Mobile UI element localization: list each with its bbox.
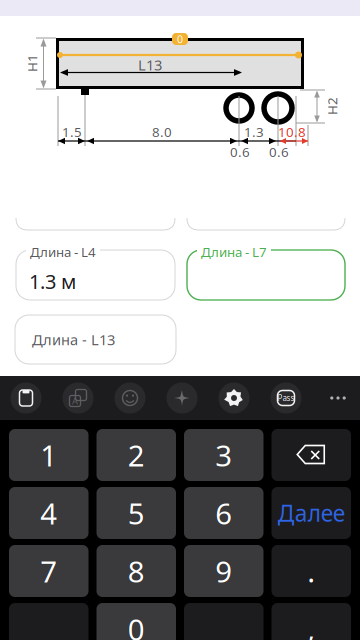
staticText: Длина - L4 bbox=[30, 243, 96, 261]
button[interactable]: 0 bbox=[96, 603, 176, 640]
button[interactable]: Далее bbox=[271, 487, 351, 539]
button[interactable]: 5 bbox=[96, 487, 176, 539]
button[interactable]: 2 bbox=[96, 429, 176, 481]
staticText: 1.5 bbox=[62, 123, 82, 141]
button[interactable]: Settings bbox=[212, 376, 256, 420]
button[interactable]: Stickers bbox=[56, 376, 100, 420]
staticText: A bbox=[72, 395, 78, 407]
staticText: Длина - L13 bbox=[32, 330, 115, 349]
button[interactable]: , bbox=[271, 603, 351, 640]
staticText: 8.0 bbox=[152, 123, 172, 141]
staticText: 4 bbox=[40, 493, 57, 532]
button[interactable]: 4 bbox=[9, 487, 88, 539]
staticText: 0 bbox=[128, 609, 145, 640]
staticText: 9 bbox=[215, 551, 232, 590]
button[interactable]: Длина - L13 bbox=[15, 315, 176, 364]
button[interactable]: 7 bbox=[9, 545, 88, 597]
staticText: Длина - L7 bbox=[201, 243, 267, 261]
staticText: 3 bbox=[215, 435, 232, 474]
button[interactable]: . bbox=[271, 545, 351, 597]
staticText: 5 bbox=[128, 493, 145, 532]
button[interactable]: Clipboard bbox=[4, 376, 48, 420]
button[interactable]: 3 bbox=[184, 429, 263, 481]
staticText: H2 bbox=[323, 97, 341, 115]
button[interactable]: Effects bbox=[160, 376, 204, 420]
staticText: 10.8 bbox=[278, 123, 306, 141]
staticText: H1 bbox=[23, 54, 41, 72]
staticText: 1 bbox=[40, 435, 57, 474]
staticText: 0 bbox=[177, 32, 183, 46]
staticText: 0.6 bbox=[269, 143, 289, 161]
button[interactable]: 9 bbox=[184, 545, 263, 597]
staticText: 1.3 bbox=[244, 123, 264, 141]
staticText: Далее bbox=[278, 498, 345, 528]
button[interactable]: Длина - L7 bbox=[187, 250, 345, 300]
staticText: 2 bbox=[128, 435, 145, 474]
staticText: L13 bbox=[138, 55, 162, 74]
button[interactable]: 6 bbox=[184, 487, 263, 539]
button[interactable]: 1 bbox=[9, 429, 88, 481]
staticText: 1.3 м bbox=[29, 268, 76, 295]
button[interactable]: More bbox=[318, 376, 358, 420]
button[interactable]: Passwords bbox=[264, 376, 308, 420]
staticText: Pass bbox=[277, 393, 294, 403]
button[interactable]: 8 bbox=[96, 545, 176, 597]
button[interactable]: Emoji bbox=[108, 376, 152, 420]
button[interactable]: Длина - L4 bbox=[16, 250, 175, 300]
staticText: 6 bbox=[215, 493, 232, 532]
button[interactable]: Backspace bbox=[271, 429, 351, 481]
staticText: 8 bbox=[128, 551, 145, 590]
staticText: 7 bbox=[40, 551, 57, 590]
staticText: 0.6 bbox=[230, 143, 250, 161]
staticText: , bbox=[308, 611, 315, 640]
staticText: . bbox=[307, 551, 315, 590]
